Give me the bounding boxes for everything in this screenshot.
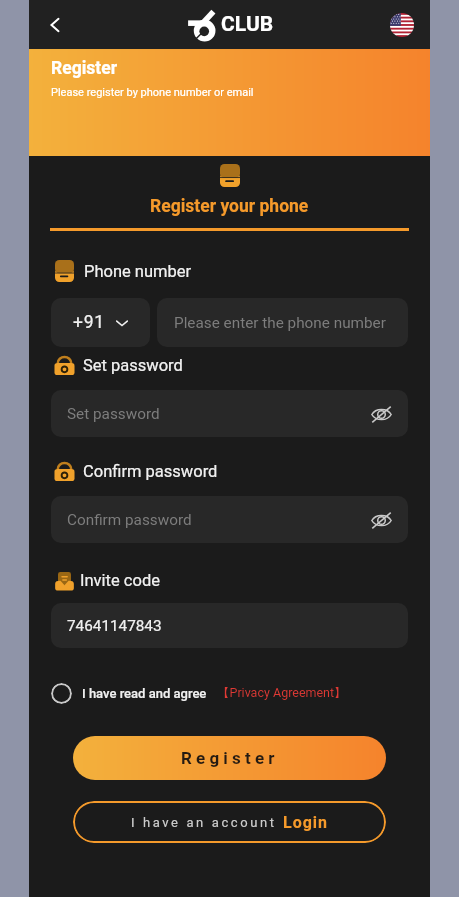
staticText: Login [283,813,329,832]
staticText: Please enter the phone number [174,314,386,332]
staticText: Phone number [84,262,192,281]
staticText: Register [51,58,118,79]
button[interactable]: I have an account [73,801,386,843]
button[interactable]: Back [34,4,76,46]
staticText: I have read and agree [82,686,207,701]
staticText: +91 [73,312,105,333]
staticText: Set password [83,356,183,375]
button[interactable]: Confirm password [51,496,408,543]
staticText: Confirm password [67,511,192,529]
staticText: CLUB [221,12,274,37]
staticText: Set password [67,405,160,423]
staticText: Please register by phone number or email [51,86,254,99]
button[interactable]: +91 [51,298,150,347]
button[interactable]: 74641147843 [51,603,408,648]
staticText: Register [181,748,279,768]
button[interactable]: Toggle password visibility [368,401,394,427]
button[interactable]: Toggle password visibility [368,507,394,533]
button[interactable]: Register [73,736,386,780]
button[interactable]: I have read and agree [51,682,347,704]
staticText: I have an account [131,815,283,830]
staticText: Invite code [80,571,160,590]
staticText: Confirm password [83,462,218,481]
button[interactable]: Set password [51,390,408,437]
staticText: Register your phone [150,196,309,217]
staticText: 【Privacy Agreement】 [217,685,347,701]
staticText: 74641147843 [67,617,162,635]
button[interactable]: Please enter the phone number [157,298,408,347]
button[interactable]: Language [386,9,418,41]
